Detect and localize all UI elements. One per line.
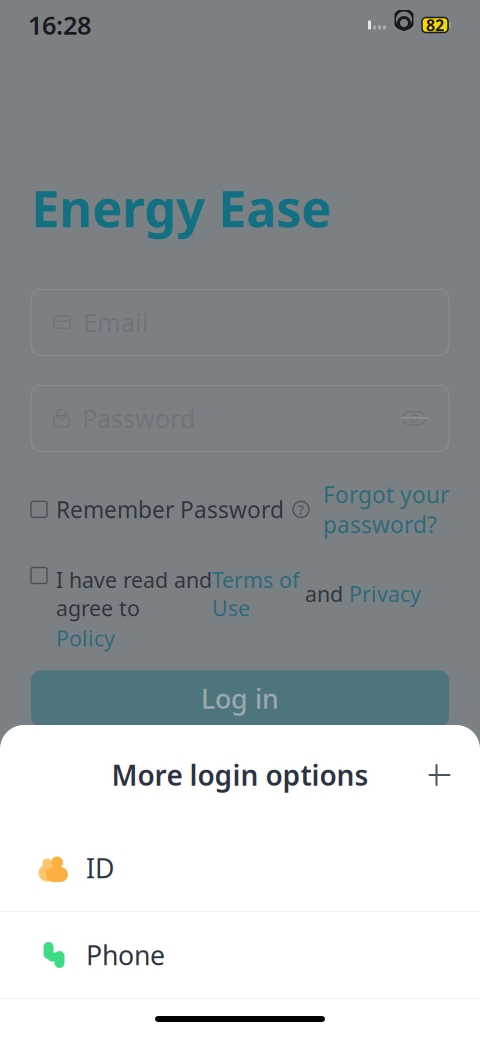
staticText: Energy Ease (31, 174, 331, 241)
button[interactable]: Register (31, 740, 449, 796)
button[interactable]: Log in (31, 670, 449, 726)
staticText: Phone (86, 937, 165, 973)
button[interactable]: Close (416, 753, 460, 797)
staticText: More login options (111, 756, 368, 794)
staticText: Remember Password (56, 494, 284, 524)
staticText: Password (82, 401, 196, 435)
staticText: and (299, 580, 349, 608)
staticText: Email (83, 305, 149, 339)
staticText: ? (298, 500, 304, 518)
button[interactable]: Policy (56, 624, 115, 652)
staticText: Terms of Use (212, 565, 299, 622)
button[interactable]: Terms of Use (212, 565, 299, 622)
button[interactable]: ID (0, 825, 480, 911)
staticText: Forgot your password? (323, 479, 449, 539)
staticText: 16:28 (28, 8, 91, 42)
button[interactable]: Show password (401, 409, 427, 427)
button[interactable]: Privacy (349, 580, 421, 608)
staticText: Log in (201, 681, 279, 716)
button[interactable]: Remember Password (31, 494, 309, 524)
staticText: ID (86, 850, 114, 886)
staticText: I have read and agree to (56, 565, 212, 622)
button[interactable]: Phone (0, 912, 480, 998)
staticText: 82 (426, 14, 444, 36)
staticText: Register (187, 751, 292, 786)
staticText: Privacy (349, 580, 421, 608)
button[interactable]: Forgot your password? (323, 479, 449, 539)
staticText: Policy (56, 624, 115, 652)
button[interactable]: Agree to terms (31, 565, 47, 583)
